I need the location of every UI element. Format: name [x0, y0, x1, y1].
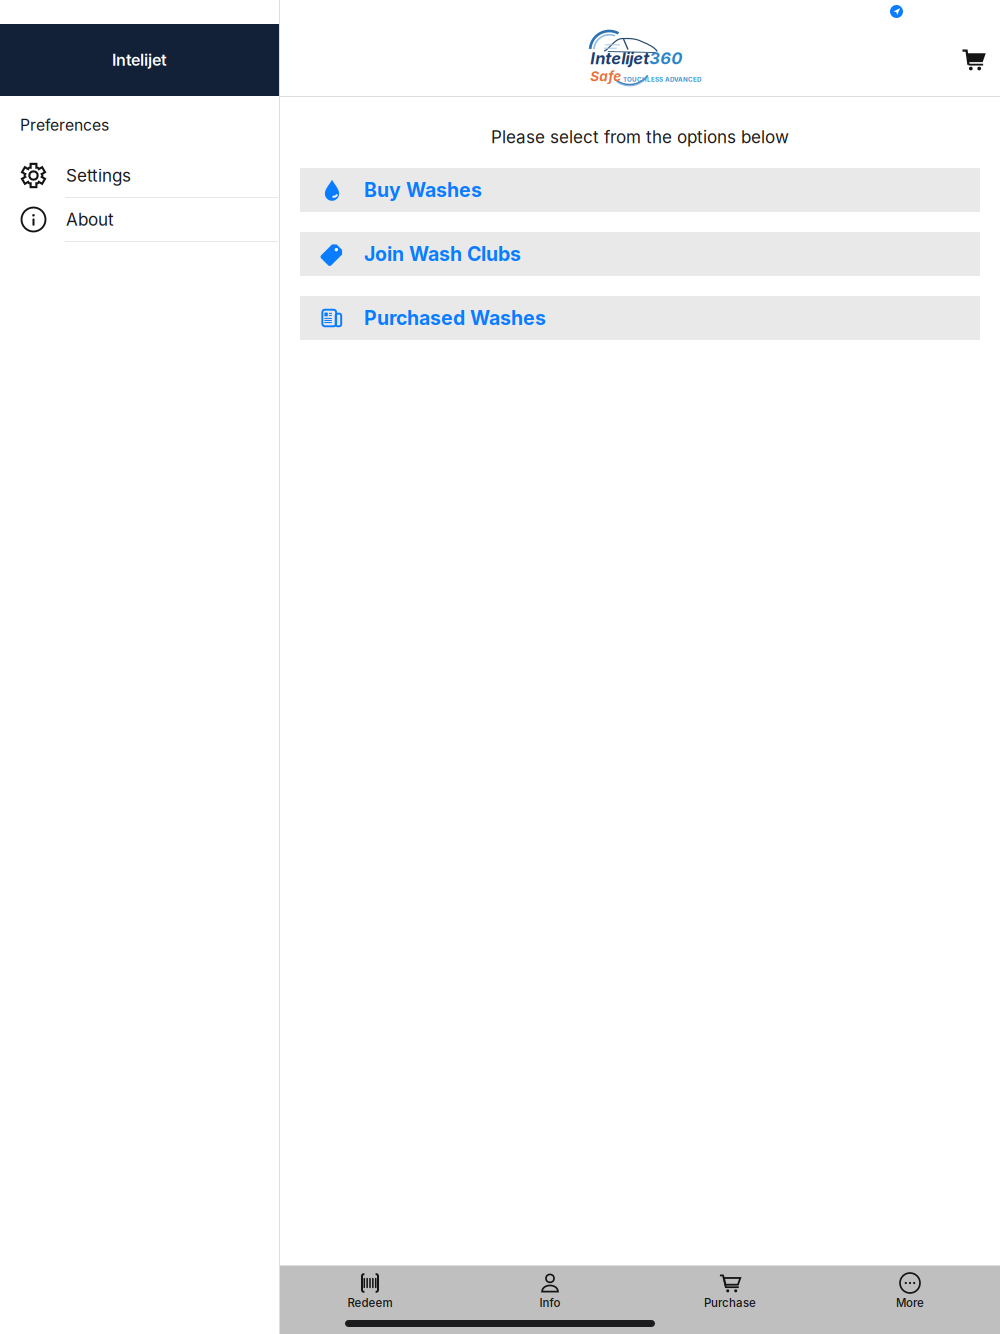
button[interactable]: Purchase: [640, 1266, 820, 1326]
staticText: Preferences: [20, 115, 109, 134]
staticText: About: [66, 209, 114, 230]
button[interactable]: Info: [460, 1266, 640, 1326]
staticText: Info: [539, 1296, 560, 1310]
staticText: Join Wash Clubs: [364, 242, 521, 266]
staticText: Please select from the options below: [491, 127, 789, 147]
staticText: Intelijet: [112, 50, 167, 70]
button[interactable]: Buy Washes: [300, 168, 980, 212]
staticText: Purchased Washes: [364, 306, 546, 330]
staticText: Intelijet: [590, 48, 649, 68]
staticText: More: [896, 1296, 924, 1310]
staticText: Purchase: [704, 1296, 756, 1310]
staticText: Safe: [590, 68, 621, 84]
button[interactable]: Redeem: [280, 1266, 460, 1326]
button[interactable]: Purchased Washes: [300, 296, 980, 340]
button[interactable]: Cart: [948, 33, 1000, 85]
staticText: 360: [649, 48, 682, 68]
button[interactable]: Settings: [0, 154, 279, 198]
button[interactable]: More: [820, 1266, 1000, 1326]
button[interactable]: About: [0, 198, 279, 242]
button[interactable]: Join Wash Clubs: [300, 232, 980, 276]
staticText: Buy Washes: [364, 178, 482, 202]
staticText: Settings: [66, 165, 131, 186]
staticText: Redeem: [347, 1296, 392, 1310]
staticText: TOUCHLESS ADVANCED: [623, 76, 701, 83]
